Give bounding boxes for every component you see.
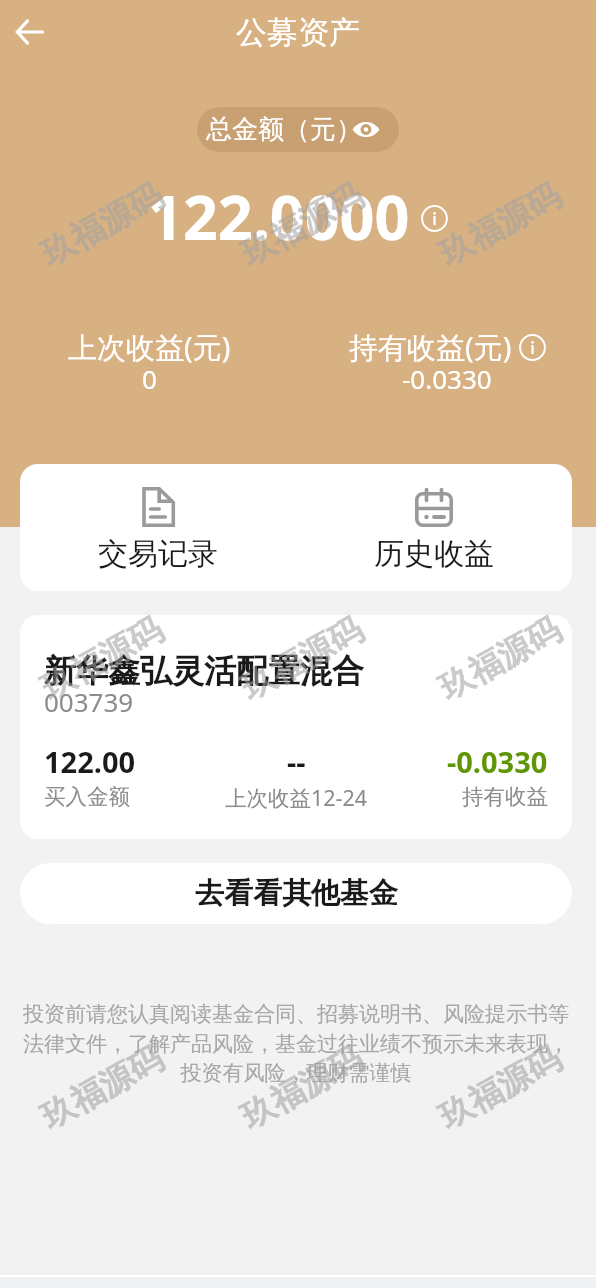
staticText: 上次收益12-24 xyxy=(225,783,368,812)
staticText: 玖福源码 xyxy=(432,175,568,275)
staticText: 玖福源码 xyxy=(34,1038,170,1138)
staticText: 新华鑫弘灵活配置混合 xyxy=(44,651,364,691)
staticText: 玖福源码 xyxy=(234,175,370,275)
staticText: -- xyxy=(287,742,306,781)
button[interactable]: 新华鑫弘灵活配置混合 xyxy=(20,615,572,839)
staticText: 交易记录 xyxy=(98,535,218,573)
staticText: 总金额（元） xyxy=(206,113,362,146)
staticText: 公募资产 xyxy=(236,13,360,52)
staticText: 122.00 xyxy=(44,742,136,781)
staticText: 持有收益(元) xyxy=(349,327,512,367)
button[interactable]: 总金额（元） xyxy=(197,107,399,152)
staticText: 玖福源码 xyxy=(234,1038,370,1138)
staticText: -0.0330 xyxy=(402,361,492,396)
staticText: 122.0000 xyxy=(148,175,410,258)
button[interactable]: Info about holding profit xyxy=(519,334,546,361)
staticText: 玖福源码 xyxy=(34,609,170,709)
staticText: -0.0330 xyxy=(447,742,548,781)
staticText: 玖福源码 xyxy=(432,609,568,709)
staticText: 玖福源码 xyxy=(234,609,370,709)
staticText: 玖福源码 xyxy=(34,175,170,275)
staticText: 上次收益(元) xyxy=(68,327,231,367)
staticText: 买入金额 xyxy=(44,783,130,810)
button[interactable]: Info about total amount xyxy=(421,205,448,232)
button[interactable]: Back xyxy=(7,10,51,54)
staticText: 去看看其他基金 xyxy=(195,875,398,912)
button[interactable]: 历史收益 xyxy=(296,464,572,591)
staticText: 003739 xyxy=(44,684,134,719)
button[interactable]: 去看看其他基金 xyxy=(20,863,572,924)
staticText: 投资前请您认真阅读基金合同、招募说明书、风险提示书等法律文件，了解产品风险，基金… xyxy=(19,1001,573,1086)
staticText: 历史收益 xyxy=(374,535,494,573)
button[interactable]: 交易记录 xyxy=(20,464,296,591)
staticText: 玖福源码 xyxy=(432,1038,568,1138)
staticText: 持有收益 xyxy=(462,783,548,810)
staticText: 0 xyxy=(142,361,157,396)
